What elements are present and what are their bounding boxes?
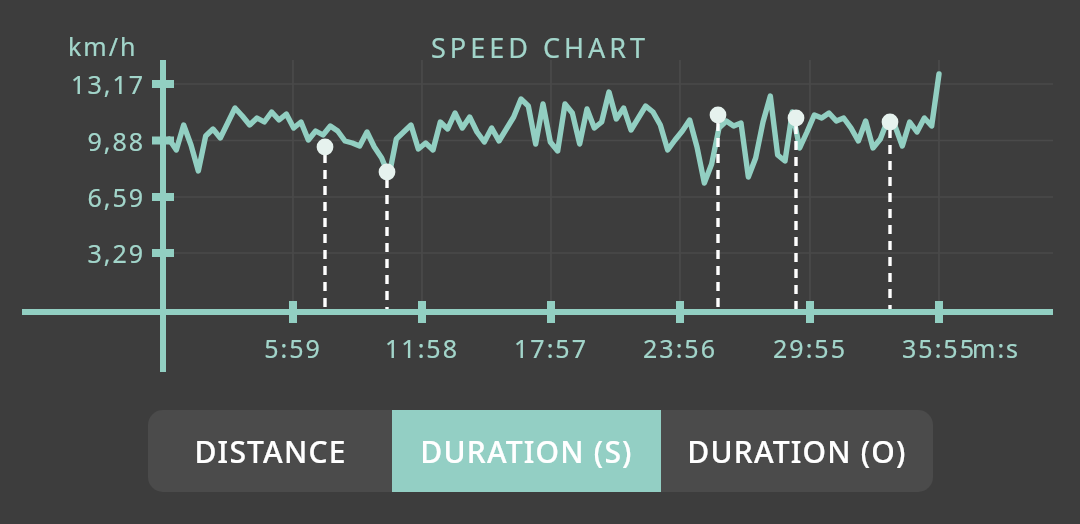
staticText: 11:58 [362,331,482,365]
staticText: DISTANCE [194,431,347,472]
staticText: 3,29 [30,236,145,270]
staticText: 6,59 [30,180,145,214]
staticText: SPEED CHART [0,29,1080,66]
staticText: 29:55 [750,331,870,365]
staticText: 35:55 [879,331,999,365]
button[interactable]: DISTANCE [148,410,392,492]
staticText: km/h [68,29,138,63]
staticText: DURATION (O) [687,431,907,472]
staticText: 23:56 [620,331,740,365]
button[interactable]: DURATION (S) [392,410,661,492]
button[interactable]: DURATION (O) [661,410,933,492]
staticText: 9,88 [30,124,145,158]
staticText: 13,17 [30,67,145,101]
staticText: 5:59 [233,331,353,365]
staticText: m:s [972,331,1021,365]
staticText: DURATION (S) [420,431,633,472]
staticText: 17:57 [491,331,611,365]
